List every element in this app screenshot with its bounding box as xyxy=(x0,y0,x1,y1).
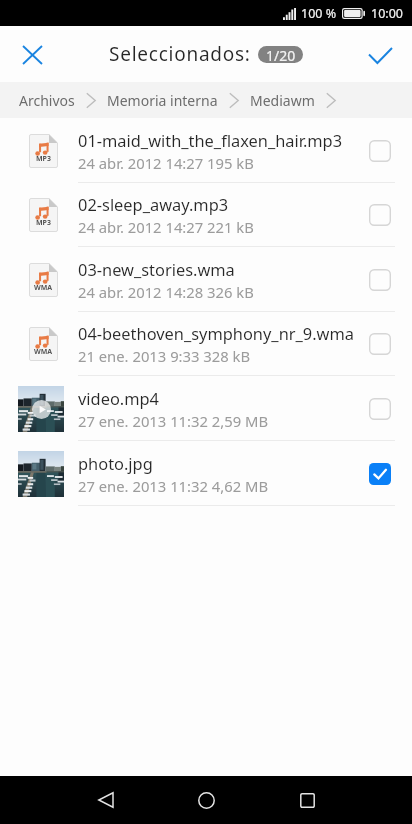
staticText: 24 abr. 2012 14:27 195 kB xyxy=(78,153,254,173)
staticText: 02-sleep_away.mp3 xyxy=(78,193,229,215)
staticText: WMA xyxy=(34,347,53,357)
staticText: Archivos xyxy=(19,91,75,110)
button[interactable]: WMA xyxy=(0,247,412,312)
staticText: Seleccionados: xyxy=(109,41,251,67)
button[interactable]: Archivos xyxy=(14,85,80,116)
button[interactable]: Cerrar xyxy=(10,33,54,77)
staticText: 21 ene. 2013 9:33 328 kB xyxy=(78,346,251,366)
button[interactable]: Inicio xyxy=(156,776,257,824)
button[interactable]: Seleccionar xyxy=(357,191,402,239)
button[interactable]: Seleccionar xyxy=(357,385,402,433)
staticText: photo.jpg xyxy=(78,452,153,474)
staticText: 24 abr. 2012 14:28 326 kB xyxy=(78,282,254,302)
staticText: Mediawm xyxy=(250,91,315,110)
staticText: 1/20 xyxy=(266,46,296,63)
staticText: WMA xyxy=(34,283,53,293)
staticText: 24 abr. 2012 14:27 221 kB xyxy=(78,217,254,237)
button[interactable]: MP3 xyxy=(0,183,412,247)
staticText: 100 % xyxy=(301,5,337,22)
button[interactable]: Confirmar xyxy=(358,33,402,77)
button[interactable]: Mediawm xyxy=(245,85,320,116)
button[interactable]: Recientes xyxy=(257,776,358,824)
button[interactable]: video.mp4 xyxy=(0,376,412,441)
button[interactable]: Seleccionar xyxy=(357,127,402,175)
staticText: MP3 xyxy=(36,154,51,164)
staticText: 01-maid_with_the_flaxen_hair.mp3 xyxy=(78,129,343,151)
staticText: MP3 xyxy=(36,218,51,228)
staticText: video.mp4 xyxy=(78,387,159,409)
button[interactable]: WMA xyxy=(0,311,412,376)
staticText: 03-new_stories.wma xyxy=(78,258,235,280)
button[interactable]: Seleccionar xyxy=(357,450,402,498)
button[interactable]: Seleccionar xyxy=(357,320,402,368)
button[interactable]: Memoria interna xyxy=(102,85,223,116)
staticText: 27 ene. 2013 11:32 4,62 MB xyxy=(78,476,269,496)
staticText: 27 ene. 2013 11:32 2,59 MB xyxy=(78,411,269,431)
staticText: 04-beethoven_symphony_nr_9.wma xyxy=(78,322,354,344)
button[interactable]: photo.jpg xyxy=(0,441,412,506)
button[interactable]: Atrás xyxy=(55,776,156,824)
staticText: 10:00 xyxy=(371,5,403,22)
button[interactable]: Seleccionar xyxy=(357,256,402,304)
staticText: Memoria interna xyxy=(107,91,218,110)
button[interactable]: MP3 xyxy=(0,118,412,183)
